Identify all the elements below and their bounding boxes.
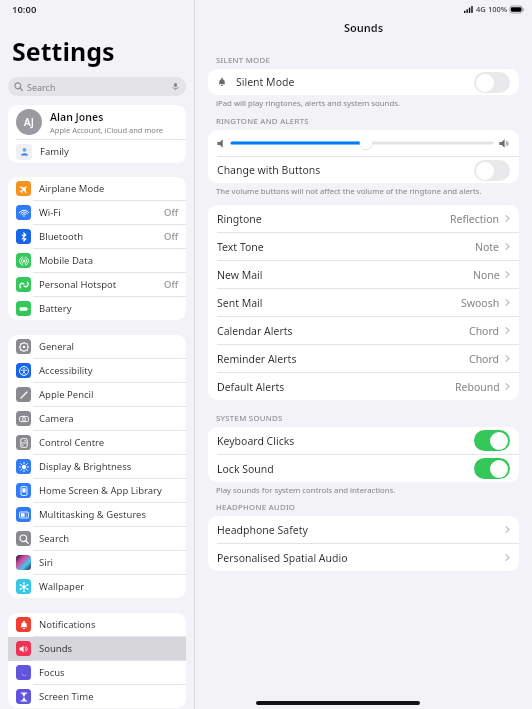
button[interactable]: On xyxy=(474,458,510,479)
button[interactable]: Wi-Fi xyxy=(8,201,186,224)
staticText: RINGTONE AND ALERTS xyxy=(216,116,309,127)
staticText: Default Alerts xyxy=(217,380,285,394)
staticText: Note xyxy=(475,240,500,254)
staticText: General xyxy=(39,340,75,353)
button[interactable]: Airplane Mode xyxy=(8,177,186,200)
staticText: Reflection xyxy=(450,212,500,226)
button[interactable]: General xyxy=(8,335,186,358)
staticText: Sounds xyxy=(39,642,73,655)
button[interactable]: Sent Mail xyxy=(208,289,519,316)
staticText: Personal Hotspot xyxy=(39,278,117,291)
button[interactable]: Screen Time xyxy=(8,685,186,708)
staticText: Apple Account, iCloud and more xyxy=(50,125,164,135)
button[interactable]: Personalised Spatial Audio xyxy=(208,544,519,571)
staticText: Search xyxy=(27,81,56,93)
staticText: Accessibility xyxy=(39,364,93,377)
button[interactable]: AJ xyxy=(8,105,186,139)
staticText: Multitasking & Gestures xyxy=(39,508,147,521)
staticText: Family xyxy=(40,145,69,158)
staticText: 10:00 xyxy=(12,3,37,16)
staticText: Personalised Spatial Audio xyxy=(217,551,348,565)
staticText: Off xyxy=(164,278,178,291)
staticText: Swoosh xyxy=(461,296,500,310)
staticText: Alan Jones xyxy=(50,110,104,124)
staticText: Lock Sound xyxy=(217,462,274,476)
button[interactable]: Off xyxy=(474,160,510,181)
staticText: Change with Buttons xyxy=(217,163,321,177)
staticText: Settings xyxy=(12,34,115,68)
staticText: Sounds xyxy=(344,20,384,35)
staticText: Rebound xyxy=(455,380,500,394)
button[interactable]: Battery xyxy=(8,297,186,320)
staticText: iPad will play ringtones, alerts and sys… xyxy=(216,98,401,109)
staticText: Ringtone xyxy=(217,212,262,226)
button[interactable]: Display & Brightness xyxy=(8,455,186,478)
button[interactable]: New Mail xyxy=(208,261,519,288)
button[interactable]: Search xyxy=(8,527,186,550)
button[interactable]: Camera xyxy=(8,407,186,430)
staticText: SYSTEM SOUNDS xyxy=(216,413,283,424)
staticText: Focus xyxy=(39,666,65,679)
staticText: 4G xyxy=(476,4,486,14)
staticText: Calendar Alerts xyxy=(217,324,293,338)
staticText: Apple Pencil xyxy=(39,388,94,401)
staticText: Play sounds for system controls and inte… xyxy=(216,485,396,496)
staticText: Bluetooth xyxy=(39,230,84,243)
button[interactable]: Off xyxy=(474,72,510,93)
staticText: SILENT MODE xyxy=(216,55,271,66)
staticText: Screen Time xyxy=(39,690,94,703)
staticText: Search xyxy=(39,532,70,545)
staticText: Display & Brightness xyxy=(39,460,132,473)
button[interactable]: Personal Hotspot xyxy=(8,273,186,296)
staticText: HEADPHONE AUDIO xyxy=(216,502,296,513)
button[interactable]: Calendar Alerts xyxy=(208,317,519,344)
button[interactable]: Silent Mode xyxy=(208,69,519,95)
staticText: Keyboard Clicks xyxy=(217,434,295,448)
button[interactable]: Lock Sound xyxy=(208,455,519,482)
staticText: Silent Mode xyxy=(236,75,295,89)
staticText: Wallpaper xyxy=(39,580,85,593)
button[interactable]: Multitasking & Gestures xyxy=(8,503,186,526)
button[interactable]: Headphone Safety xyxy=(208,516,519,543)
staticText: Airplane Mode xyxy=(39,182,105,195)
button[interactable]: Bluetooth xyxy=(8,225,186,248)
button[interactable]: Focus xyxy=(8,661,186,684)
button[interactable]: Notifications xyxy=(8,613,186,636)
button[interactable]: Default Alerts xyxy=(208,373,519,400)
button[interactable]: Ringtone xyxy=(208,205,519,232)
staticText: Camera xyxy=(39,412,74,425)
button[interactable]: Accessibility xyxy=(8,359,186,382)
button[interactable]: On xyxy=(474,430,510,451)
button[interactable]: Text Tone xyxy=(208,233,519,260)
button[interactable]: Keyboard Clicks xyxy=(208,427,519,454)
button[interactable]: Sounds xyxy=(8,637,186,660)
button[interactable]: Family xyxy=(8,140,186,163)
button[interactable]: Mobile Data xyxy=(8,249,186,272)
staticText: New Mail xyxy=(217,268,263,282)
staticText: Mobile Data xyxy=(39,254,93,267)
button[interactable]: Reminder Alerts xyxy=(208,345,519,372)
staticText: Wi-Fi xyxy=(39,206,61,219)
staticText: Off xyxy=(164,206,178,219)
staticText: Sent Mail xyxy=(217,296,263,310)
button[interactable]: Home Screen & App Library xyxy=(8,479,186,502)
staticText: Reminder Alerts xyxy=(217,352,297,366)
staticText: Headphone Safety xyxy=(217,523,308,537)
staticText: Battery xyxy=(39,302,72,315)
staticText: None xyxy=(473,268,500,282)
staticText: Chord xyxy=(469,324,500,338)
staticText: Chord xyxy=(469,352,500,366)
staticText: Off xyxy=(164,230,178,243)
staticText: The volume buttons will not affect the v… xyxy=(216,186,482,197)
button[interactable]: Wallpaper xyxy=(8,575,186,598)
staticText: Home Screen & App Library xyxy=(39,484,162,497)
staticText: 100% xyxy=(488,4,508,14)
staticText: AJ xyxy=(24,115,34,129)
button[interactable]: Change with Buttons xyxy=(208,157,519,183)
staticText: Siri xyxy=(39,556,54,569)
button[interactable]: Siri xyxy=(8,551,186,574)
staticText: Notifications xyxy=(39,618,96,631)
button[interactable]: Apple Pencil xyxy=(8,383,186,406)
button[interactable]: Control Centre xyxy=(8,431,186,454)
button[interactable]: Search xyxy=(8,77,186,96)
